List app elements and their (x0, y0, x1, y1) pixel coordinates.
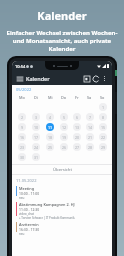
staticText: Di (34, 95, 38, 100)
button[interactable]: 14 (86, 123, 94, 131)
staticText: Arzttermin (19, 222, 39, 227)
button[interactable]: Sync (91, 74, 100, 83)
staticText: Do (61, 95, 67, 100)
button[interactable]: 8 (99, 113, 107, 121)
staticText: 20 (75, 135, 80, 140)
staticText: 9 (21, 125, 24, 130)
staticText: Übersicht (53, 167, 72, 173)
staticText: 21 (88, 135, 93, 140)
staticText: 13 (75, 125, 80, 130)
staticText: 6 (76, 115, 79, 120)
staticText: 28 (88, 145, 93, 150)
button[interactable]: 12 (60, 123, 68, 131)
staticText: 10 (34, 125, 39, 130)
staticText: 29 (101, 145, 106, 150)
button[interactable]: 13 (73, 123, 81, 131)
staticText: Sa (87, 95, 92, 100)
button[interactable]: 15 (99, 123, 107, 131)
staticText: 11 (48, 125, 53, 130)
staticText: 10:00 - 11:00 (19, 191, 40, 196)
staticText: 3 (35, 115, 38, 120)
staticText: 24 (34, 145, 39, 150)
staticText: 23 (20, 145, 25, 150)
staticText: 14 (88, 125, 93, 130)
button[interactable]: 24 (32, 143, 40, 151)
staticText: 16 (20, 135, 25, 140)
staticText: So (100, 95, 105, 100)
staticText: + Torsten Schwarz | IT Produkt Kommunik. (19, 216, 76, 220)
button[interactable]: 1 (99, 103, 107, 111)
staticText: 5 (63, 115, 66, 120)
button[interactable]: 20 (73, 133, 81, 141)
button[interactable]: 5 (60, 113, 68, 121)
button[interactable]: 18 (46, 133, 54, 141)
staticText: 05/2022 (16, 87, 32, 92)
staticText: 15 (101, 125, 106, 130)
button[interactable]: 26 (60, 143, 68, 151)
button[interactable]: 11 (46, 123, 54, 131)
staticText: 27 (75, 145, 80, 150)
button[interactable]: Abstimmung Kampagnen 2. HJ (16, 202, 108, 220)
staticText: 10:54 (15, 64, 26, 69)
staticText: Kalender (37, 8, 87, 23)
staticText: Mi (48, 95, 53, 100)
staticText: neu (19, 232, 25, 236)
button[interactable]: View (82, 74, 91, 83)
staticText: 22 (101, 135, 106, 140)
staticText: Abstimmung Kampagnen 2. HJ (19, 202, 75, 207)
staticText: video_chat (19, 212, 35, 216)
button[interactable]: 29 (99, 143, 107, 151)
staticText: 12 (62, 125, 67, 130)
button[interactable]: 25 (46, 143, 54, 151)
button[interactable]: Arzttermin (16, 222, 108, 236)
button[interactable]: 17 (32, 133, 40, 141)
button[interactable]: 3 (32, 113, 40, 121)
button[interactable]: 21 (86, 133, 94, 141)
button[interactable]: 16 (18, 133, 26, 141)
button[interactable]: 6 (73, 113, 81, 121)
button[interactable]: Übersicht (12, 165, 112, 174)
staticText: 7 (89, 115, 92, 120)
staticText: 11.05.2022 (16, 178, 37, 183)
button[interactable]: 28 (86, 143, 94, 151)
staticText: 31 (34, 155, 39, 160)
staticText: 19 (62, 135, 67, 140)
button[interactable]: More options (100, 74, 109, 83)
button[interactable]: 22 (99, 133, 107, 141)
staticText: 8 (102, 115, 105, 120)
staticText: Kalender (26, 75, 50, 82)
staticText: 2 (21, 115, 24, 120)
staticText: 18 (48, 135, 53, 140)
button[interactable]: 31 (32, 153, 40, 161)
staticText: Mo (19, 95, 25, 100)
staticText: Fr (75, 95, 79, 100)
staticText: 26 (62, 145, 67, 150)
staticText: 11:30 - 12:30 (19, 207, 40, 212)
button[interactable]: 7 (86, 113, 94, 121)
button[interactable]: 27 (73, 143, 81, 151)
button[interactable]: 30 (18, 153, 26, 161)
button[interactable]: 9 (18, 123, 26, 131)
button[interactable]: 4 (46, 113, 54, 121)
staticText: Meeting (19, 186, 35, 191)
button[interactable]: Meeting (16, 186, 108, 200)
staticText: 30 (20, 155, 25, 160)
button[interactable]: 2 (18, 113, 26, 121)
staticText: 25 (48, 145, 53, 150)
button[interactable]: Menu (15, 74, 24, 83)
staticText: 17 (34, 135, 39, 140)
button[interactable]: 10 (32, 123, 40, 131)
staticText: neu (19, 196, 25, 200)
staticText: 1 (102, 105, 105, 110)
staticText: Einfacher Wechsel zwischen Wochen- und M… (4, 29, 120, 53)
button[interactable]: 19 (60, 133, 68, 141)
staticText: 16:30 - 17:30 (19, 227, 40, 232)
button[interactable]: 23 (18, 143, 26, 151)
staticText: 4 (49, 115, 52, 120)
